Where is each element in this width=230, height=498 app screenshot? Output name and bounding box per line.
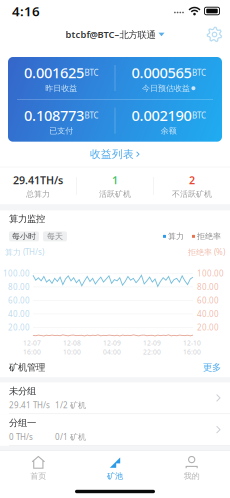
button[interactable]: 收益列表	[0, 142, 230, 167]
button[interactable]: 每小时	[9, 231, 39, 241]
staticText: 16:00	[183, 347, 201, 356]
staticText: 4:16	[12, 2, 40, 20]
staticText: 算力 (TH/s)	[5, 247, 44, 257]
staticText: 拒绝率 (%)	[188, 247, 225, 257]
staticText: 未分组	[9, 385, 36, 397]
staticText: 不活跃矿机	[172, 189, 212, 199]
staticText: 算力	[168, 231, 184, 241]
staticText: 20.00	[197, 322, 219, 333]
staticText: 活跃矿机	[99, 189, 131, 199]
staticText: 分组一	[9, 417, 36, 429]
staticText: 29.41 TH/s	[9, 400, 50, 410]
staticText: 总算力	[26, 189, 50, 199]
staticText: 12-07	[23, 338, 41, 347]
staticText: 昨日收益	[45, 83, 77, 93]
staticText: 每小时	[12, 231, 36, 241]
button[interactable]: Settings	[207, 23, 230, 46]
staticText: 40.00	[8, 309, 30, 319]
staticText: 16:00	[23, 347, 41, 356]
staticText: 12-10	[183, 338, 201, 347]
staticText: BTC	[85, 110, 99, 121]
staticText: btcbf@BTC–北方联通	[65, 28, 155, 41]
staticText: 已支付	[49, 126, 73, 136]
staticText: BTC	[85, 67, 99, 78]
staticText: 22:00	[143, 347, 161, 356]
staticText: 2	[189, 173, 195, 187]
staticText: 每天	[47, 231, 63, 241]
staticText: 算力监控	[9, 213, 45, 225]
staticText: 100.00	[3, 268, 30, 279]
staticText: 10:00	[63, 347, 81, 356]
staticText: 0/1 矿机	[55, 431, 86, 442]
staticText: 拒绝率	[197, 231, 221, 241]
staticText: 0.108773	[24, 105, 84, 125]
button[interactable]: 更多	[203, 362, 221, 373]
staticText: 矿机管理	[9, 362, 45, 373]
staticText: 20.00	[8, 322, 30, 333]
button[interactable]: 首页	[0, 451, 77, 485]
staticText: 60.00	[8, 295, 30, 306]
button[interactable]: 未分组	[0, 382, 230, 414]
button[interactable]: 分组一	[0, 414, 230, 446]
button[interactable]: 每天	[43, 231, 67, 241]
staticText: 0 TH/s	[9, 431, 33, 442]
staticText: 收益列表	[90, 148, 134, 161]
button[interactable]: 矿池	[77, 451, 153, 485]
staticText: BTC	[192, 110, 206, 121]
staticText: 更多	[203, 362, 221, 373]
staticText: 12-09	[103, 338, 121, 347]
staticText: 0.001625	[24, 63, 84, 82]
staticText: 12-08	[63, 338, 81, 347]
staticText: 04:00	[103, 347, 121, 356]
staticText: 80.00	[197, 282, 219, 292]
staticText: 0.000565	[131, 63, 191, 82]
staticText: 29.41TH/s	[13, 173, 63, 187]
button[interactable]: 我的	[153, 451, 230, 485]
staticText: 1	[112, 173, 118, 187]
staticText: 12-09	[143, 338, 161, 347]
staticText: 80.00	[8, 282, 30, 292]
staticText: 矿池	[107, 471, 123, 481]
staticText: 今日预估收益	[142, 83, 190, 93]
staticText: BTC	[192, 67, 206, 78]
staticText: 40.00	[197, 309, 219, 319]
staticText: 首页	[30, 471, 46, 481]
staticText: 1/2 矿机	[55, 400, 86, 410]
staticText: 我的	[184, 471, 200, 481]
staticText: 余额	[161, 126, 177, 136]
staticText: 0.002190	[131, 105, 191, 125]
staticText: 60.00	[197, 295, 219, 306]
staticText: 100.00	[197, 268, 224, 279]
